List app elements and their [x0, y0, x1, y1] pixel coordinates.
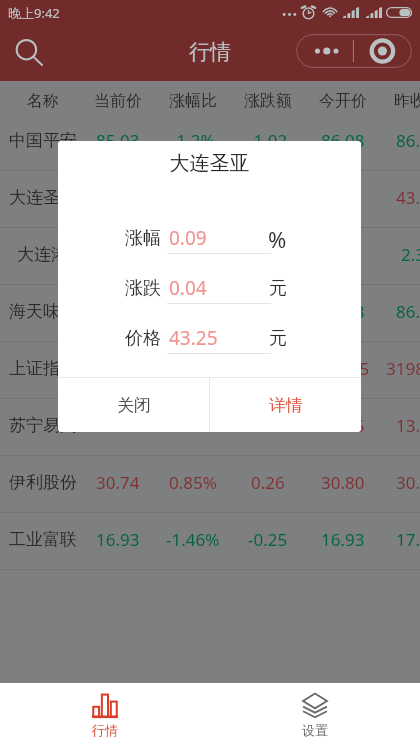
staticText: 0.04	[169, 275, 207, 301]
staticText: 详情	[269, 395, 303, 416]
staticText: 3189.5	[316, 357, 370, 380]
staticText: 86.05	[396, 129, 420, 152]
staticText: 86.97	[396, 300, 420, 323]
staticText: %	[268, 224, 287, 254]
staticText: 3193.30	[86, 357, 149, 380]
button[interactable]: Search	[6, 29, 52, 75]
staticText: 43.25	[169, 325, 218, 351]
staticText: 大连圣亚	[9, 187, 77, 208]
staticText: 86.08	[321, 129, 365, 152]
button[interactable]: 上证指数	[0, 342, 420, 399]
staticText: -1.46%	[166, 528, 220, 551]
staticText: 行情	[0, 39, 420, 65]
staticText: 30.80	[321, 471, 365, 494]
staticText: 海天味业	[9, 301, 77, 322]
staticText: 86.38	[321, 300, 365, 323]
staticText: 涨跌额	[244, 91, 292, 111]
staticText: 名称	[27, 91, 59, 111]
staticText: 涨跌	[125, 277, 161, 300]
staticText: 0.15%	[169, 414, 217, 437]
staticText: 0.09	[169, 225, 207, 251]
staticText: 晚上9:42	[8, 4, 60, 22]
staticText: -0.25	[248, 528, 288, 551]
staticText: 2.28	[101, 243, 135, 266]
staticText: 43.21	[396, 186, 420, 209]
staticText: 元	[269, 277, 287, 300]
staticText: 大连圣亚	[58, 151, 361, 176]
staticText: 价格	[125, 327, 161, 350]
staticText: 苏宁易购	[9, 415, 77, 436]
staticText: 3198.51	[386, 357, 420, 380]
staticText: 涨幅	[125, 227, 161, 250]
staticText: 涨幅比	[169, 91, 217, 111]
button[interactable]: 设置	[210, 683, 420, 747]
staticText: -1.01%	[166, 300, 220, 323]
staticText: 设置	[302, 722, 328, 738]
button[interactable]: 伊利股份	[0, 456, 420, 513]
staticText: 0.85%	[169, 471, 217, 494]
staticText: 13.24	[96, 414, 140, 437]
button[interactable]: 工业富联	[0, 513, 420, 570]
staticText: -0.02	[248, 243, 288, 266]
staticText: 大连港	[17, 244, 68, 265]
staticText: 13.25	[321, 414, 365, 437]
staticText: 17.18	[396, 528, 420, 551]
staticText: 工业富联	[9, 529, 77, 550]
button[interactable]: 大连港	[0, 228, 420, 285]
staticText: -1.2%	[171, 129, 215, 152]
staticText: 13.22	[396, 414, 420, 437]
staticText: 中国平安	[9, 130, 77, 151]
staticText: -0.88	[248, 300, 288, 323]
button[interactable]: 大连圣亚	[0, 171, 420, 228]
button[interactable]: 关闭	[58, 378, 209, 432]
staticText: 行情	[92, 722, 118, 738]
staticText: 16.93	[321, 528, 365, 551]
staticText: 30.54	[396, 471, 420, 494]
button[interactable]: 苏宁易购	[0, 399, 420, 456]
staticText: -0.88%	[166, 243, 220, 266]
staticText: 0.27%	[169, 357, 217, 380]
staticText: 昨收价	[394, 91, 420, 111]
staticText: 0.26	[251, 471, 285, 494]
staticText: 30.74	[96, 471, 140, 494]
button[interactable]: 海天味业	[0, 285, 420, 342]
staticText: 元	[269, 327, 287, 350]
staticText: 当前价	[94, 91, 142, 111]
staticText: 今开价	[319, 91, 367, 111]
button[interactable]: Menu	[296, 34, 412, 68]
staticText: 43.21	[321, 186, 365, 209]
staticText: 上证指数	[9, 358, 77, 379]
button[interactable]: 详情	[210, 378, 361, 432]
button[interactable]: 行情	[0, 683, 210, 747]
staticText: 8.56	[251, 357, 285, 380]
staticText: 2.30	[401, 243, 420, 266]
staticText: 16.93	[96, 528, 140, 551]
staticText: 0.02	[251, 414, 285, 437]
staticText: 关闭	[117, 395, 151, 416]
staticText: 85.03	[96, 129, 140, 152]
staticText: -1.02	[248, 129, 288, 152]
button[interactable]: 中国平安	[0, 114, 420, 171]
staticText: 伊利股份	[9, 472, 77, 493]
